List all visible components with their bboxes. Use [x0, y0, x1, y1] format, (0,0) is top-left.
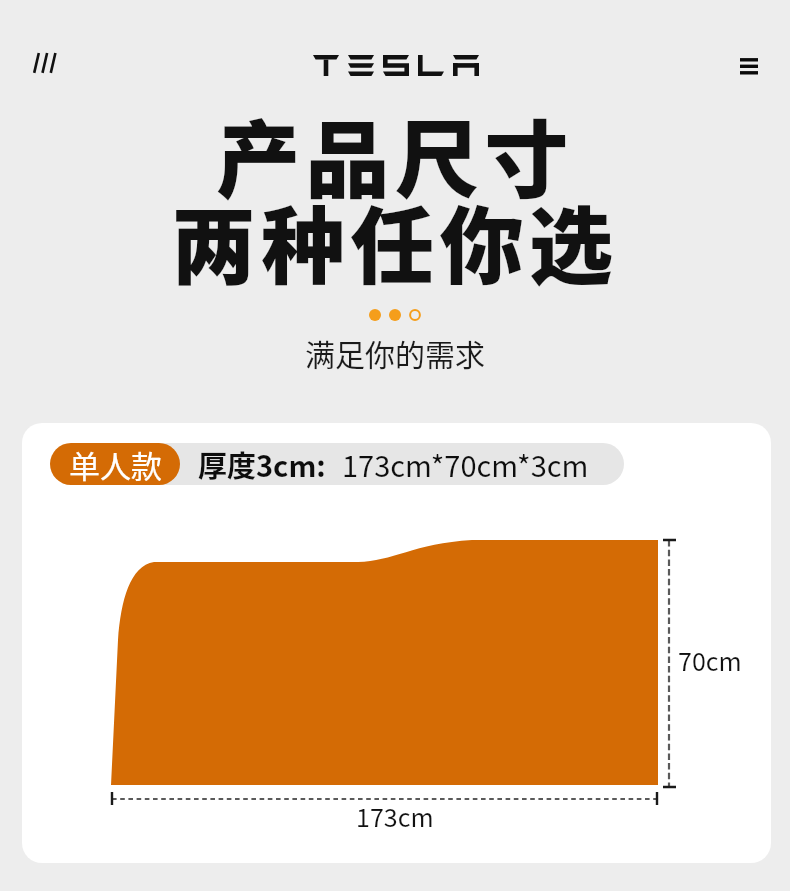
staticText: 173cm — [356, 798, 434, 834]
staticText: 产品尺寸 — [216, 94, 574, 216]
staticText: 单人款 — [69, 443, 162, 484]
button[interactable]: 单人款 — [50, 443, 180, 485]
button[interactable]: Menu — [14, 38, 76, 88]
button[interactable]: Tesla — [313, 55, 476, 76]
staticText: 满足你的需求 — [305, 331, 485, 374]
staticText: 两种任你选 — [171, 180, 619, 302]
button[interactable]: Page 1 — [369, 309, 381, 321]
button[interactable]: Page 3 — [409, 309, 421, 321]
staticText: 70cm — [678, 642, 742, 678]
button[interactable]: Page 2 — [389, 309, 401, 321]
staticText: 厚度3cm: — [198, 443, 326, 485]
button[interactable]: Open navigation menu — [724, 40, 774, 90]
staticText: 173cm*70cm*3cm — [342, 443, 589, 485]
